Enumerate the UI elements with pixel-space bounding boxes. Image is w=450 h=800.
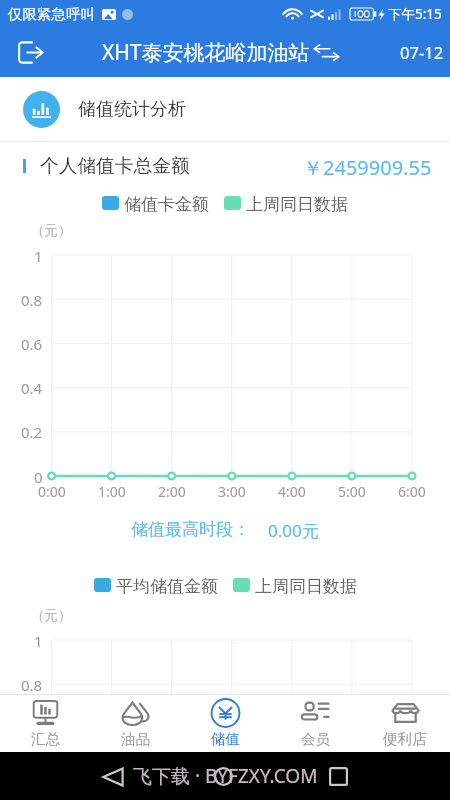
- button[interactable]: 返回: [98, 762, 127, 791]
- staticText: 平均储值金额: [116, 576, 218, 594]
- staticText: 0.6: [21, 334, 43, 354]
- staticText: 下午5:15: [388, 5, 442, 23]
- staticText: 0:00: [38, 482, 66, 501]
- staticText: 飞下载 · BYFZXY.COM: [133, 763, 318, 789]
- button[interactable]: 会员: [270, 695, 360, 752]
- button[interactable]: 主页: [209, 762, 238, 791]
- staticText: 上周同日数据: [246, 194, 348, 212]
- staticText: 0.2: [21, 422, 43, 442]
- staticText: 汇总: [31, 730, 60, 748]
- staticText: 4:00: [278, 482, 306, 501]
- button[interactable]: 油品: [90, 695, 180, 752]
- staticText: 0.6: [21, 719, 43, 739]
- staticText: XHT泰安桃花峪加油站: [102, 38, 310, 67]
- button[interactable]: XHT泰安桃花峪加油站: [102, 38, 341, 67]
- staticText: 仅限紧急呼叫: [8, 5, 95, 23]
- staticText: （元）: [31, 222, 72, 239]
- staticText: 2:00: [158, 482, 186, 501]
- button[interactable]: 便利店: [360, 695, 450, 752]
- button[interactable]: 储值统计分析: [0, 77, 450, 141]
- staticText: 1: [34, 631, 43, 651]
- staticText: 0.00元: [268, 519, 319, 542]
- staticText: 3:00: [218, 482, 246, 501]
- button[interactable]: 最近任务: [324, 762, 353, 791]
- button[interactable]: 储值: [180, 695, 270, 752]
- staticText: 油品: [121, 730, 150, 748]
- staticText: 07-12: [400, 41, 444, 63]
- staticText: 6:00: [398, 482, 426, 501]
- button[interactable]: 汇总: [0, 695, 90, 752]
- button[interactable]: 退出登录: [13, 35, 47, 69]
- staticText: 0: [34, 467, 43, 487]
- staticText: 0.8: [21, 290, 43, 310]
- staticText: 储值最高时段：: [131, 519, 250, 540]
- staticText: 1:00: [98, 482, 126, 501]
- staticText: 会员: [301, 730, 330, 748]
- staticText: 储值统计分析: [78, 98, 186, 121]
- staticText: 个人储值卡总金额: [40, 154, 190, 178]
- staticText: 储值卡金额: [124, 194, 209, 212]
- staticText: （元）: [31, 607, 72, 624]
- staticText: 1: [34, 246, 43, 266]
- staticText: 储值: [211, 730, 240, 748]
- staticText: 0.4: [21, 378, 43, 398]
- staticText: 便利店: [383, 730, 427, 748]
- staticText: 上周同日数据: [255, 576, 357, 594]
- staticText: 5:00: [338, 482, 366, 501]
- staticText: ￥2459909.55: [303, 154, 432, 178]
- staticText: 0.8: [21, 675, 43, 695]
